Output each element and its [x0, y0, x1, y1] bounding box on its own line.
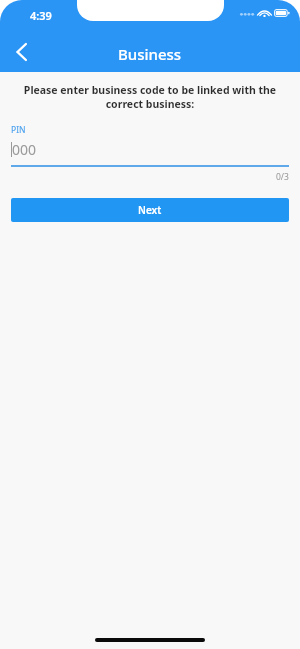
button[interactable]: 000	[0, 139, 300, 159]
staticText: Please enter business code to be linked …	[14, 83, 286, 111]
staticText: Business	[118, 44, 182, 64]
staticText: 000	[12, 140, 37, 159]
button[interactable]: Back	[0, 32, 44, 72]
button[interactable]: Next	[11, 198, 289, 222]
staticText: 0/3	[276, 171, 289, 183]
staticText: Next	[138, 203, 162, 217]
staticText: PIN	[11, 124, 26, 136]
staticText: 4:39	[30, 8, 52, 23]
